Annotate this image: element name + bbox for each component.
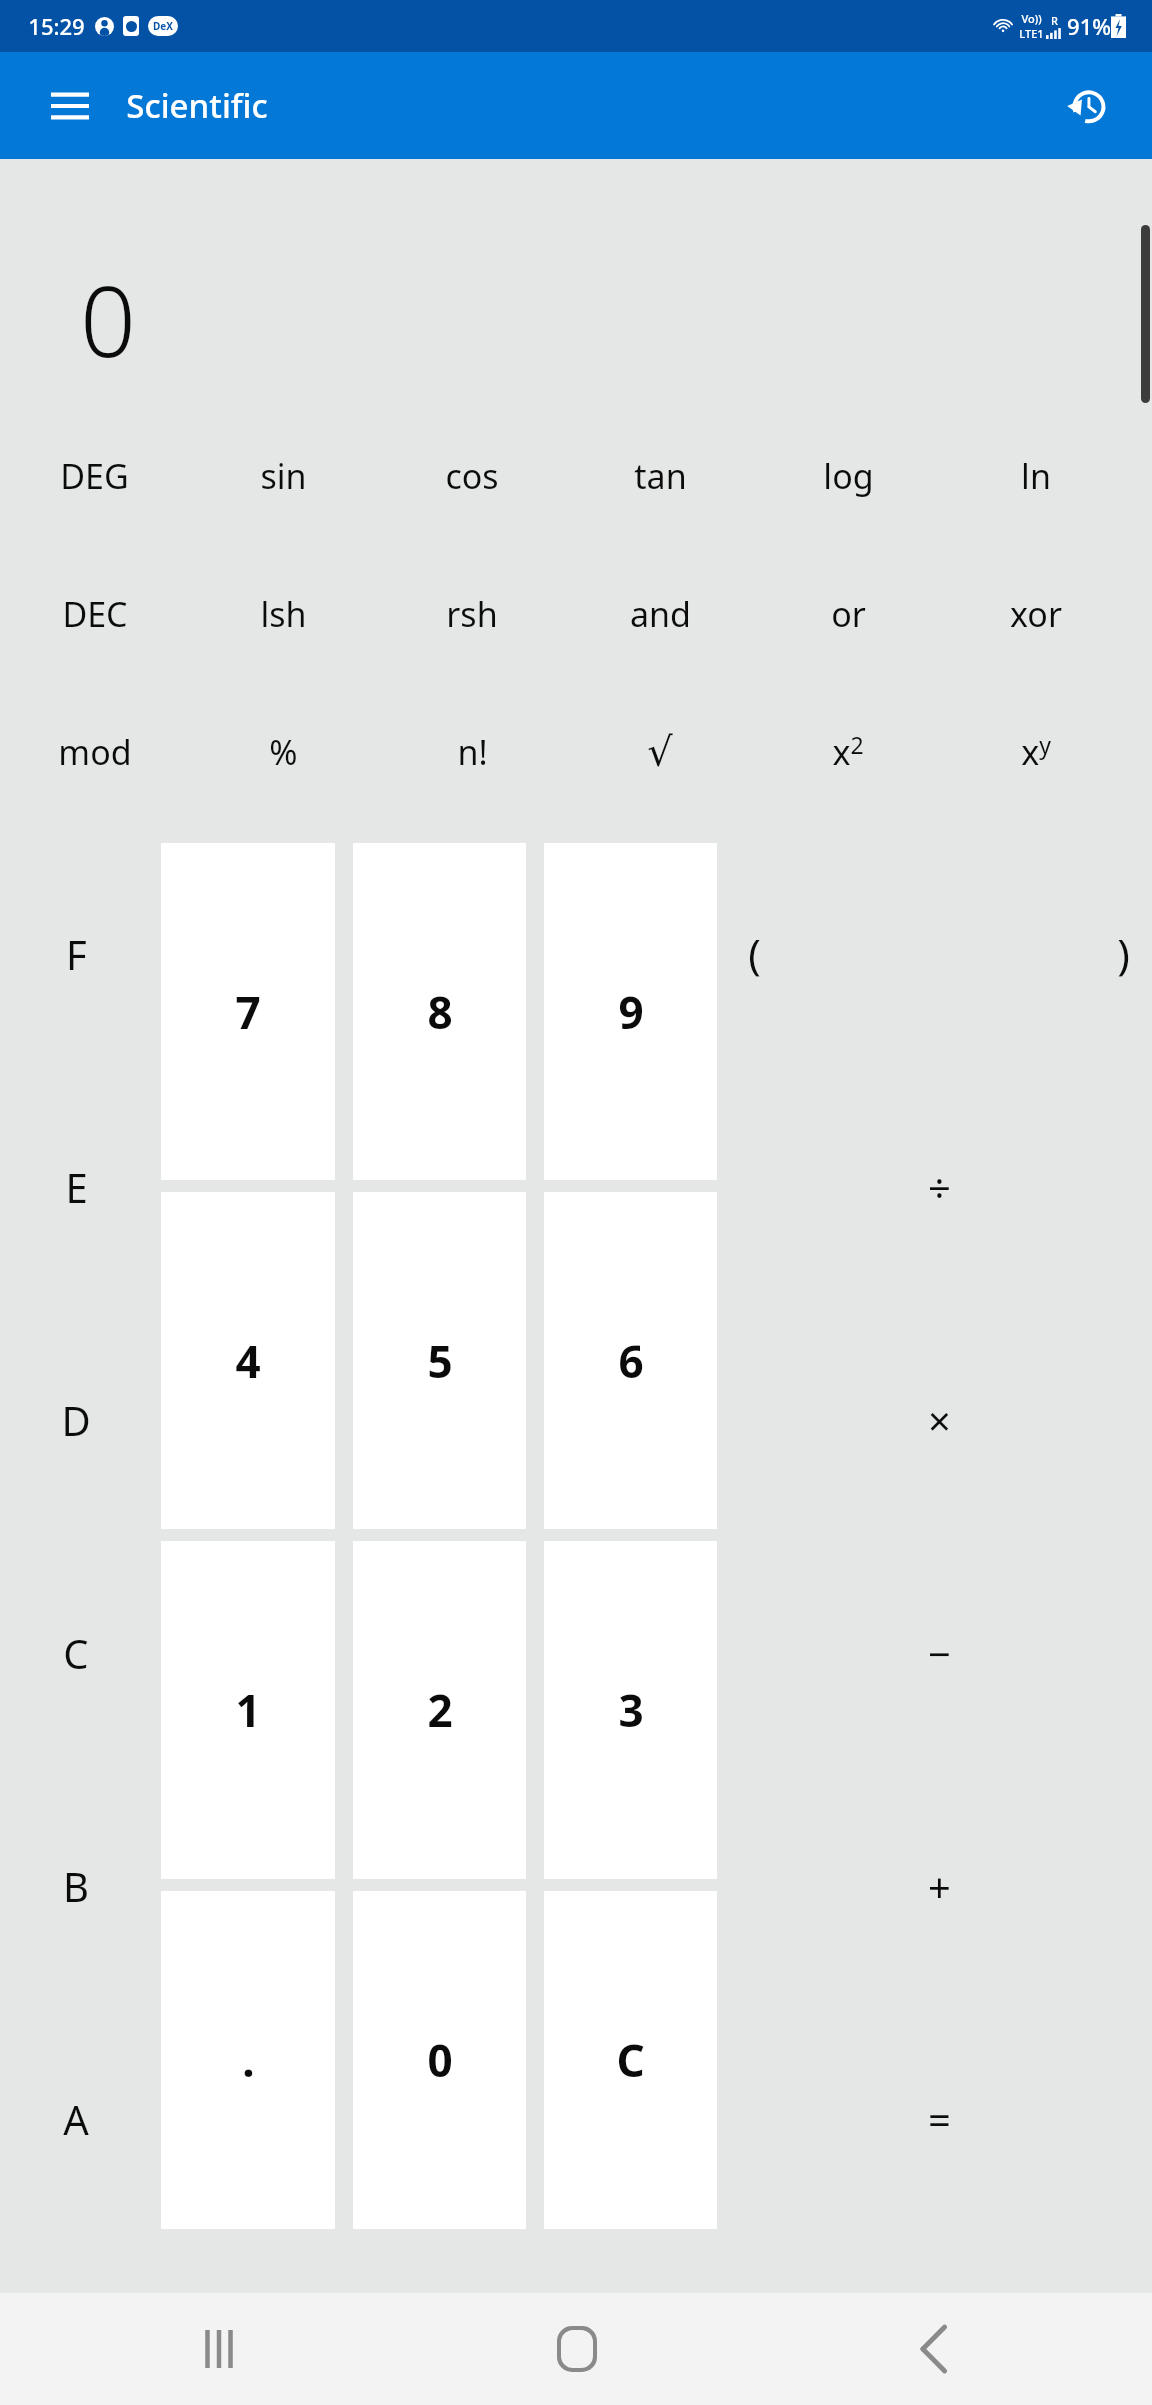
staticText: A	[63, 2092, 89, 2146]
staticText: DEC	[62, 591, 128, 637]
button[interactable]: lsh	[189, 545, 378, 683]
button[interactable]: −	[726, 1536, 1152, 1769]
staticText: 4	[235, 1331, 261, 1391]
staticText: log	[823, 453, 874, 499]
staticText: R	[1051, 13, 1058, 28]
staticText: .	[242, 2030, 255, 2090]
staticText: DEG	[60, 453, 129, 499]
button[interactable]: DEC	[0, 545, 189, 683]
staticText: 3	[618, 1680, 644, 1740]
staticText: 0	[80, 252, 136, 385]
button[interactable]: Home	[398, 2293, 755, 2405]
staticText: −	[928, 1626, 951, 1680]
staticText: n!	[457, 729, 488, 775]
button[interactable]: (	[748, 925, 761, 982]
staticText: xor	[1010, 591, 1062, 637]
button[interactable]: )	[1117, 925, 1130, 982]
staticText: cos	[445, 453, 499, 499]
staticText: B	[63, 1859, 89, 1913]
staticText: √	[647, 729, 673, 776]
staticText: =	[928, 2092, 951, 2146]
staticText: C	[616, 2030, 645, 2090]
button[interactable]: or	[754, 545, 942, 683]
staticText: rsh	[446, 591, 498, 637]
button[interactable]: =	[726, 2002, 1152, 2235]
staticText: mod	[58, 729, 132, 775]
button[interactable]: mod	[0, 683, 189, 821]
staticText: +	[928, 1859, 951, 1913]
staticText: Scientific	[126, 83, 268, 128]
button[interactable]: ln	[942, 407, 1130, 545]
button[interactable]: ÷	[726, 1070, 1152, 1303]
button[interactable]: A	[0, 2002, 152, 2235]
staticText: xy	[1021, 729, 1051, 775]
staticText: 7	[235, 982, 261, 1042]
button[interactable]: n!	[378, 683, 566, 821]
button[interactable]: log	[754, 407, 942, 545]
staticText: LTE1	[1019, 26, 1044, 41]
button[interactable]: 9	[544, 843, 717, 1180]
button[interactable]: 8	[353, 843, 526, 1180]
button[interactable]: tan	[566, 407, 754, 545]
staticText: or	[831, 591, 866, 637]
staticText: tan	[634, 453, 687, 499]
button[interactable]: 7	[161, 843, 335, 1180]
staticText: 2	[427, 1680, 453, 1740]
button[interactable]: 5	[353, 1192, 526, 1529]
staticText: 15:29	[28, 11, 85, 41]
staticText: sin	[260, 453, 307, 499]
button[interactable]: Recent apps	[40, 2293, 398, 2405]
button[interactable]: DEG	[0, 407, 189, 545]
staticText: 9	[618, 982, 644, 1042]
staticText: (	[748, 925, 761, 982]
staticText: 91%	[1067, 11, 1111, 41]
button[interactable]: C	[544, 1891, 717, 2229]
staticText: F	[66, 927, 87, 981]
staticText: DeX	[153, 19, 173, 33]
button[interactable]: cos	[378, 407, 566, 545]
staticText: ln	[1021, 453, 1051, 499]
button[interactable]: 6	[544, 1192, 717, 1529]
staticText: x2	[832, 729, 864, 775]
button[interactable]: +	[726, 1769, 1152, 2002]
button[interactable]: History	[1058, 78, 1114, 134]
button[interactable]: B	[0, 1769, 152, 2002]
button[interactable]: and	[566, 545, 754, 683]
button[interactable]: √	[566, 683, 754, 821]
staticText: )	[1117, 925, 1130, 982]
button[interactable]: xor	[942, 545, 1130, 683]
staticText: C	[63, 1626, 89, 1680]
button[interactable]: sin	[189, 407, 378, 545]
button[interactable]: 2	[353, 1541, 526, 1879]
staticText: 5	[427, 1331, 453, 1391]
button[interactable]: .	[161, 1891, 335, 2229]
button[interactable]: 1	[161, 1541, 335, 1879]
button[interactable]: Back	[755, 2293, 1112, 2405]
staticText: 1	[235, 1680, 261, 1740]
button[interactable]: C	[0, 1536, 152, 1769]
button[interactable]: %	[189, 683, 378, 821]
button[interactable]: rsh	[378, 545, 566, 683]
staticText: %	[269, 729, 298, 775]
staticText: ×	[928, 1393, 951, 1447]
staticText: Vo))	[1021, 11, 1042, 26]
button[interactable]: x2	[754, 683, 942, 821]
staticText: 0	[427, 2030, 453, 2090]
button[interactable]: F	[0, 837, 152, 1070]
button[interactable]: Open navigation menu	[44, 80, 96, 132]
staticText: lsh	[260, 591, 307, 637]
staticText: E	[65, 1160, 88, 1214]
staticText: and	[630, 591, 691, 637]
button[interactable]: E	[0, 1070, 152, 1303]
button[interactable]: ×	[726, 1303, 1152, 1536]
button[interactable]: 4	[161, 1192, 335, 1529]
staticText: D	[61, 1393, 91, 1447]
staticText: 8	[427, 982, 453, 1042]
button[interactable]: 3	[544, 1541, 717, 1879]
staticText: ÷	[928, 1160, 951, 1214]
button[interactable]: D	[0, 1303, 152, 1536]
staticText: 6	[618, 1331, 644, 1391]
button[interactable]: 0	[353, 1891, 526, 2229]
button[interactable]: xy	[942, 683, 1130, 821]
